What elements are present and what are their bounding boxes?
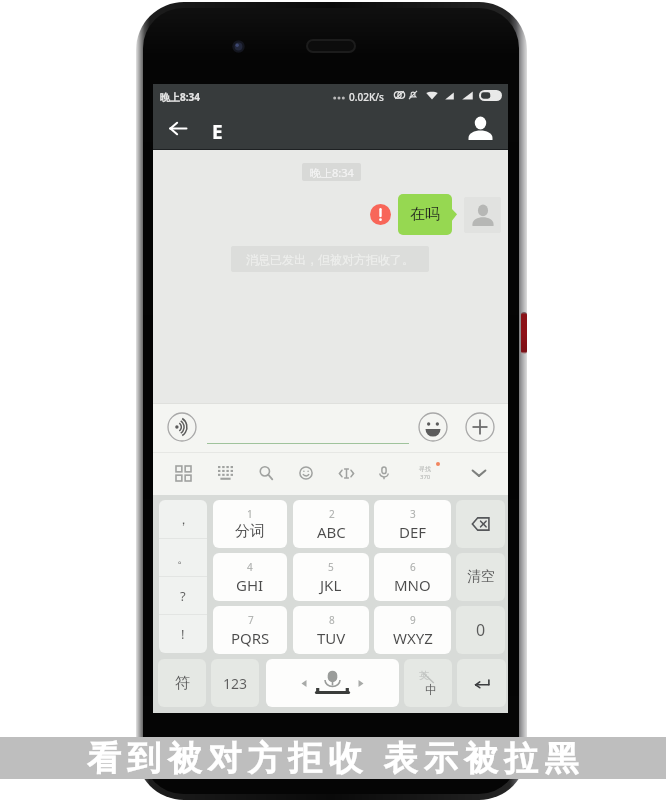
button[interactable]: Emoji — [413, 407, 453, 447]
staticText: 1 — [247, 507, 253, 521]
button[interactable]: 符 — [158, 659, 206, 707]
button[interactable]: 7 — [213, 606, 287, 654]
button[interactable]: 2 — [293, 500, 369, 548]
staticText: 英 — [419, 669, 429, 682]
button[interactable]: Text cursor — [331, 458, 361, 488]
staticText: GHI — [236, 575, 264, 595]
staticText: 符 — [175, 674, 190, 693]
staticText: 。 — [177, 550, 190, 566]
staticText: E — [212, 119, 223, 145]
staticText: JKL — [320, 575, 342, 595]
staticText: 0 — [476, 619, 486, 641]
staticText: 晚上8:34 — [160, 90, 200, 104]
button[interactable]: 8 — [293, 606, 369, 654]
button[interactable]: 123 — [211, 659, 259, 707]
button[interactable]: Contact info — [458, 106, 503, 150]
button[interactable]: Voice input — [369, 458, 399, 488]
staticText: WXYZ — [393, 628, 433, 648]
staticText: 寻找 — [419, 465, 431, 473]
button[interactable]: 6 — [374, 553, 451, 601]
staticText: 2 — [329, 507, 335, 521]
button[interactable]: Space — [266, 659, 399, 707]
staticText: 5 — [328, 560, 334, 574]
staticText: 看到被对方拒收 表示被拉黑 — [87, 734, 585, 780]
button[interactable]: 9 — [374, 606, 451, 654]
button[interactable]: Keypad — [210, 458, 240, 488]
staticText: ABC — [317, 522, 346, 542]
button[interactable]: ? — [159, 577, 207, 614]
staticText: 370 — [420, 473, 431, 481]
button[interactable]: More options — [460, 407, 500, 447]
staticText: 晚上8:34 — [310, 165, 354, 180]
button[interactable]: ， — [159, 500, 207, 538]
staticText: 清空 — [467, 568, 495, 586]
button[interactable]: 。 — [159, 539, 207, 576]
button[interactable]: Switch Chinese English — [404, 659, 452, 707]
staticText: MNO — [394, 575, 431, 595]
button[interactable]: ! — [159, 615, 207, 652]
staticText: 3 — [410, 507, 416, 521]
button[interactable]: 在吗 — [398, 194, 452, 235]
staticText: PQRS — [231, 628, 270, 648]
button[interactable]: Emoji — [291, 458, 321, 488]
staticText: 9 — [410, 613, 416, 627]
button[interactable]: 3 — [374, 500, 451, 548]
button[interactable]: Backspace — [456, 500, 505, 548]
button[interactable]: 4 — [213, 553, 287, 601]
staticText: 4 — [247, 560, 253, 574]
staticText: 中 — [425, 682, 437, 697]
staticText: ， — [177, 511, 190, 527]
staticText: 在吗 — [410, 205, 440, 224]
staticText: 7 — [248, 613, 254, 627]
staticText: ! — [181, 625, 185, 643]
staticText: 8 — [329, 613, 335, 627]
staticText: 0.02K/s — [349, 90, 384, 104]
staticText: DEF — [399, 522, 427, 542]
button[interactable]: 1 — [213, 500, 287, 548]
staticText: TUV — [317, 628, 346, 648]
staticText: ? — [180, 587, 186, 605]
button[interactable]: Enter — [457, 659, 506, 707]
button[interactable]: Hide keyboard — [464, 458, 494, 488]
button[interactable]: Voice message — [162, 407, 202, 447]
button[interactable]: Keyboard layouts — [168, 458, 198, 488]
staticText: 分词 — [235, 522, 265, 541]
button[interactable]: 清空 — [456, 553, 505, 601]
button[interactable]: 0 — [456, 606, 505, 654]
staticText: 123 — [223, 674, 248, 693]
button[interactable]: Message input — [207, 408, 409, 446]
button[interactable]: 5 — [293, 553, 369, 601]
staticText: 消息已发出，但被对方拒收了。 — [246, 252, 414, 267]
button[interactable]: Avatar — [464, 197, 501, 233]
staticText: 6 — [410, 560, 416, 574]
button[interactable]: Back — [159, 110, 197, 146]
button[interactable]: Word bank — [411, 458, 439, 488]
button[interactable]: Search — [251, 458, 281, 488]
